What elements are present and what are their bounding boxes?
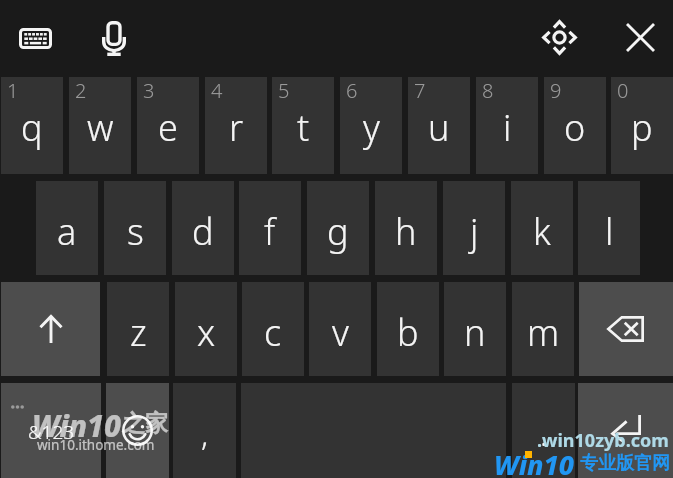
staticText: 0	[617, 77, 629, 104]
staticText: w	[87, 103, 114, 152]
staticText: 专业版官网	[580, 452, 670, 475]
staticText: Win10	[494, 446, 575, 478]
button[interactable]: x	[175, 282, 237, 376]
button[interactable]: v	[309, 282, 371, 376]
button[interactable]: l	[578, 181, 640, 275]
staticText: win10.ithome.com	[37, 436, 155, 454]
staticText: e	[158, 103, 178, 152]
staticText: q	[21, 103, 43, 152]
button[interactable]: Move keyboard	[530, 7, 588, 67]
staticText: h	[395, 207, 417, 256]
staticText: k	[533, 207, 551, 256]
staticText: .win10zyb.com	[537, 428, 669, 453]
staticText: &123	[28, 419, 75, 445]
button[interactable]: j	[443, 181, 505, 275]
button[interactable]: Shift	[1, 282, 100, 376]
staticText: g	[327, 207, 349, 256]
staticText: a	[57, 207, 77, 256]
staticText: 5	[278, 77, 290, 104]
button[interactable]: Enter	[578, 383, 673, 478]
button[interactable]: Voice typing	[85, 8, 143, 68]
button[interactable]: 8	[476, 77, 538, 174]
button[interactable]: s	[104, 181, 166, 275]
button[interactable]: h	[375, 181, 437, 275]
button[interactable]: 0	[611, 77, 673, 174]
button[interactable]: 9	[544, 77, 606, 174]
staticText: 9	[550, 77, 562, 104]
staticText: 之家	[122, 409, 168, 438]
button[interactable]: c	[242, 282, 304, 376]
staticText: c	[264, 308, 282, 357]
button[interactable]: Close keyboard	[611, 8, 669, 66]
staticText: y	[363, 103, 380, 152]
staticText: u	[428, 103, 450, 152]
staticText: j	[470, 207, 479, 256]
staticText: i	[503, 103, 512, 152]
button[interactable]: 1	[1, 77, 63, 174]
button[interactable]: .	[512, 383, 575, 478]
staticText: t	[297, 103, 310, 152]
staticText: ,	[201, 412, 209, 456]
staticText: n	[464, 308, 486, 357]
staticText: v	[332, 308, 349, 357]
button[interactable]: 3	[137, 77, 199, 174]
staticText: b	[397, 308, 419, 357]
staticText: 7	[414, 77, 426, 104]
staticText: l	[605, 207, 614, 256]
staticText: d	[192, 207, 214, 256]
button[interactable]: 2	[69, 77, 131, 174]
staticText: f	[264, 207, 276, 256]
staticText: x	[197, 308, 216, 357]
button[interactable]: 7	[408, 77, 470, 174]
button[interactable]: m	[512, 282, 574, 376]
button[interactable]: 6	[340, 77, 402, 174]
staticText: 8	[482, 77, 494, 104]
button[interactable]: b	[377, 282, 439, 376]
staticText: 2	[75, 77, 87, 104]
button[interactable]: ,	[173, 383, 236, 478]
staticText: 6	[346, 77, 358, 104]
button[interactable]: a	[36, 181, 98, 275]
button[interactable]: 5	[272, 77, 334, 174]
button[interactable]: &123	[1, 383, 101, 478]
button[interactable]: Backspace	[579, 282, 673, 376]
button[interactable]: z	[107, 282, 169, 376]
button[interactable]: Emoji	[106, 383, 169, 478]
staticText: p	[631, 103, 653, 152]
staticText: z	[130, 308, 147, 357]
staticText: 4	[211, 77, 223, 104]
staticText: s	[127, 207, 144, 256]
button[interactable]: Space	[241, 383, 506, 478]
staticText: 3	[143, 77, 155, 104]
staticText: .	[540, 412, 548, 456]
button[interactable]: 4	[205, 77, 267, 174]
staticText: Win10	[32, 405, 121, 446]
button[interactable]: k	[511, 181, 573, 275]
staticText: m	[527, 308, 560, 357]
staticText: r	[229, 103, 244, 152]
button[interactable]: f	[239, 181, 301, 275]
staticText: o	[564, 103, 586, 152]
button[interactable]: g	[307, 181, 369, 275]
button[interactable]: n	[444, 282, 506, 376]
staticText: 1	[7, 77, 19, 104]
button[interactable]: Keyboard layouts	[6, 10, 64, 66]
button[interactable]: d	[172, 181, 234, 275]
